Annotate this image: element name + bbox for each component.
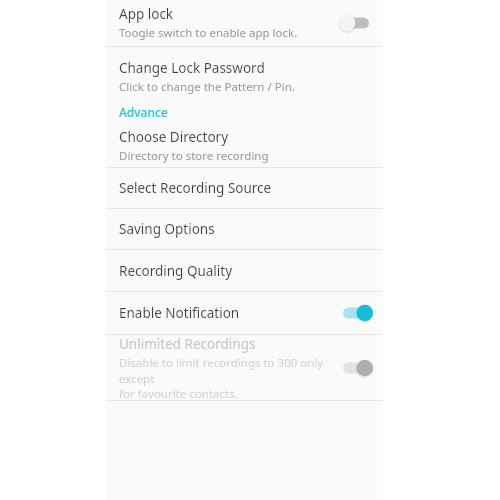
button: Unlimited Recordings	[106, 335, 383, 400]
button[interactable]: Advance	[106, 99, 383, 125]
staticText: Change Lock Password	[119, 59, 265, 77]
staticText: Select Recording Source	[119, 179, 272, 197]
staticText: App lock	[119, 5, 174, 23]
button: Toggle unlimited recordings	[338, 355, 374, 381]
staticText: Directory to store recording	[119, 148, 269, 164]
staticText: Disable to limit recordings to 300 only …	[119, 355, 332, 400]
button[interactable]: Select Recording Source	[106, 168, 383, 208]
button[interactable]: Toggle notification	[338, 300, 374, 326]
button[interactable]: Enable Notification	[106, 292, 383, 334]
button[interactable]: Recording Quality	[106, 250, 383, 291]
staticText: Unlimited Recordings	[119, 335, 256, 353]
staticText: Choose Directory	[119, 128, 229, 146]
staticText: Advance	[119, 104, 168, 120]
button[interactable]: Choose Directory	[106, 125, 383, 167]
button[interactable]: Toggle app lock	[338, 10, 374, 36]
staticText: Saving Options	[119, 220, 215, 238]
staticText: Enable Notification	[119, 304, 240, 322]
staticText: Toogle switch to enable app lock.	[119, 25, 298, 41]
staticText: Click to change the Pattern / Pin.	[119, 79, 295, 95]
staticText: Recording Quality	[119, 262, 233, 280]
button[interactable]: App lock	[106, 0, 383, 46]
button[interactable]: Saving Options	[106, 209, 383, 249]
button[interactable]: Change Lock Password	[106, 55, 383, 99]
